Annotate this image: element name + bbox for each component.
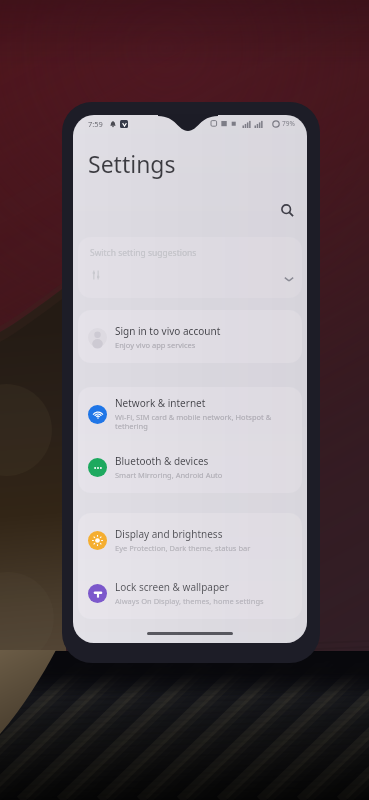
staticText: Always On Display, themes, home settings — [115, 596, 264, 606]
staticText: Wi-Fi, SIM card & mobile network, Hotspo… — [115, 412, 294, 432]
staticText: Network & internet — [115, 396, 206, 410]
button[interactable]: Lock screen & wallpaper — [78, 566, 302, 619]
staticText: Settings — [88, 148, 176, 179]
button[interactable]: Display and brightness — [78, 513, 302, 566]
staticText: Lock screen & wallpaper — [115, 580, 229, 594]
staticText: Display and brightness — [115, 527, 223, 541]
staticText: Eye Protection, Dark theme, status bar — [115, 543, 251, 553]
button[interactable]: Network & internet — [78, 387, 302, 440]
button[interactable]: Bluetooth & devices — [78, 440, 302, 493]
button[interactable]: Search — [274, 197, 300, 223]
button[interactable]: Sign in to vivo account — [78, 310, 302, 363]
staticText: 79% — [282, 119, 295, 128]
staticText: Bluetooth & devices — [115, 454, 209, 468]
staticText: Smart Mirroring, Android Auto — [115, 470, 223, 480]
staticText: Enjoy vivo app services — [115, 340, 196, 350]
staticText: Sign in to vivo account — [115, 324, 221, 338]
staticText: Switch setting suggestions — [90, 247, 197, 259]
staticText: 7:59 — [88, 119, 103, 129]
button[interactable]: Switch setting suggestions — [78, 237, 302, 298]
